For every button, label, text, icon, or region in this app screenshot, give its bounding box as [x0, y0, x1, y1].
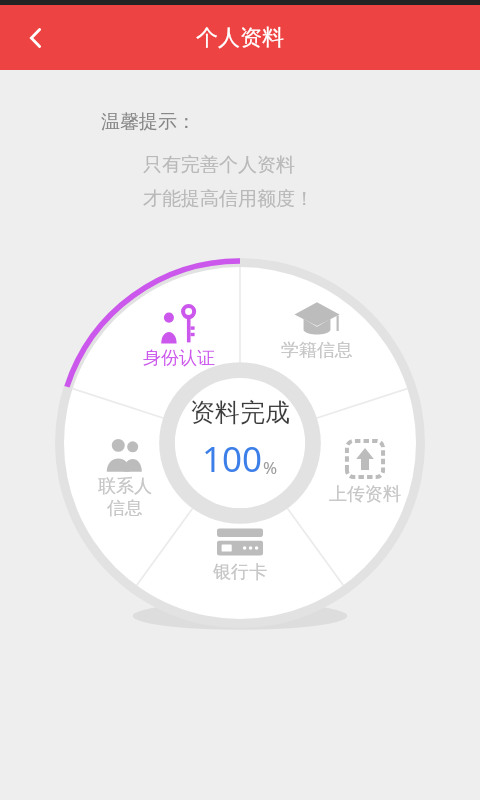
- button[interactable]: Back: [0, 5, 72, 70]
- staticText: 只有完善个人资料: [143, 153, 295, 177]
- staticText: 学籍信息: [281, 339, 353, 362]
- staticText: 联系人 信息: [98, 475, 152, 519]
- staticText: 上传资料: [329, 483, 401, 506]
- button[interactable]: 联系人信息: [65, 436, 185, 519]
- button[interactable]: 上传资料: [305, 438, 425, 506]
- staticText: 银行卡: [213, 561, 267, 584]
- staticText: 才能提高信用额度！: [143, 187, 314, 211]
- staticText: 身份认证: [143, 347, 215, 370]
- staticText: 资料完成: [190, 397, 290, 428]
- button[interactable]: 身份认证: [113, 304, 245, 370]
- button[interactable]: 学籍信息: [251, 300, 383, 362]
- button[interactable]: 银行卡: [188, 526, 292, 584]
- staticText: 温馨提示：: [101, 110, 196, 134]
- staticText: 100: [202, 435, 263, 483]
- staticText: %: [263, 456, 278, 479]
- staticText: 个人资料: [196, 24, 284, 52]
